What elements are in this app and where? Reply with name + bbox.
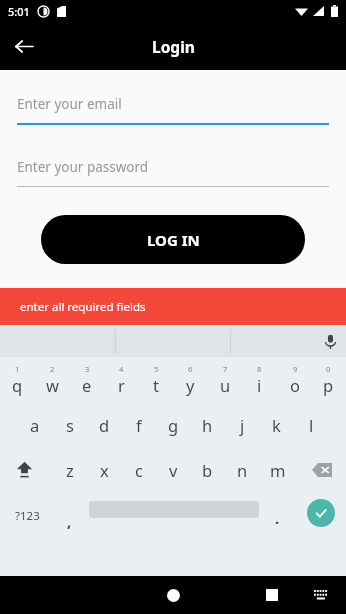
staticText: 5:01 [8, 4, 30, 19]
button[interactable]: Home [153, 576, 193, 614]
button[interactable]: LOG IN [41, 215, 305, 264]
staticText: 8 [257, 364, 262, 374]
staticText: 6 [188, 364, 193, 374]
staticText: l [309, 414, 314, 436]
staticText: s [66, 414, 74, 436]
button[interactable]: c [121, 447, 156, 492]
staticText: t [153, 374, 159, 396]
button[interactable]: 0 [311, 357, 346, 402]
button[interactable]: f [121, 402, 156, 447]
button[interactable]: Backspace [298, 447, 346, 492]
staticText: Enter your email [17, 95, 122, 113]
button[interactable]: z [52, 447, 87, 492]
staticText: . [275, 508, 280, 528]
staticText: ?123 [15, 508, 40, 524]
staticText: w [46, 374, 59, 396]
button[interactable]: . [263, 492, 292, 540]
staticText: v [169, 459, 178, 481]
button[interactable]: l [294, 402, 329, 447]
button[interactable]: 5 [138, 357, 173, 402]
staticText: , [67, 511, 72, 531]
button[interactable]: enter all required fields [0, 288, 346, 325]
button[interactable]: Recents [252, 576, 292, 614]
staticText: y [186, 374, 195, 396]
staticText: i [257, 374, 262, 396]
button[interactable]: 4 [104, 357, 139, 402]
button[interactable]: 2 [35, 357, 70, 402]
staticText: 9 [293, 364, 298, 374]
staticText: m [270, 459, 286, 481]
staticText: 1 [15, 364, 20, 374]
staticText: 0 [326, 364, 331, 374]
staticText: g [168, 414, 179, 436]
staticText: 4 [119, 364, 124, 374]
button[interactable]: 9 [277, 357, 312, 402]
staticText: a [30, 414, 40, 436]
button[interactable]: , [55, 492, 84, 540]
staticText: o [290, 374, 300, 396]
button[interactable]: 8 [242, 357, 277, 402]
staticText: k [272, 414, 281, 436]
button[interactable]: Back [0, 22, 48, 70]
button[interactable]: Switch keyboard [302, 576, 340, 614]
button[interactable]: 3 [69, 357, 104, 402]
staticText: Login [152, 36, 195, 57]
staticText: h [202, 414, 213, 436]
staticText: 5 [154, 364, 159, 374]
staticText: c [135, 459, 143, 481]
staticText: enter all required fields [20, 299, 146, 315]
button[interactable]: Enter your password [0, 158, 346, 188]
button[interactable]: g [156, 402, 191, 447]
staticText: LOG IN [147, 230, 200, 250]
staticText: x [100, 459, 109, 481]
button[interactable]: Voice input [314, 325, 346, 357]
button[interactable]: Enter your email [0, 95, 346, 125]
staticText: n [237, 459, 248, 481]
staticText: u [220, 374, 231, 396]
button[interactable]: 7 [208, 357, 243, 402]
staticText: b [202, 459, 213, 481]
staticText: Enter your password [17, 158, 149, 176]
button[interactable]: 6 [173, 357, 208, 402]
button[interactable]: h [190, 402, 225, 447]
staticText: 3 [85, 364, 90, 374]
button[interactable]: Shift [0, 447, 48, 492]
button[interactable]: 1 [0, 357, 35, 402]
staticText: j [240, 414, 245, 436]
staticText: r [118, 374, 125, 396]
staticText: p [323, 374, 334, 396]
button[interactable]: Enter [307, 499, 335, 527]
staticText: d [99, 414, 110, 436]
button[interactable]: a [17, 402, 52, 447]
button[interactable]: v [156, 447, 191, 492]
staticText: e [82, 374, 92, 396]
button[interactable]: ?123 [0, 492, 55, 540]
button[interactable]: m [260, 447, 295, 492]
button[interactable]: k [259, 402, 294, 447]
staticText: 2 [50, 364, 55, 374]
button[interactable]: s [52, 402, 87, 447]
button[interactable]: x [87, 447, 122, 492]
staticText: 7 [223, 364, 228, 374]
staticText: f [136, 414, 142, 436]
staticText: q [12, 374, 23, 396]
button[interactable]: j [225, 402, 260, 447]
button[interactable]: d [87, 402, 122, 447]
staticText: z [66, 459, 74, 481]
button[interactable]: n [225, 447, 260, 492]
button[interactable]: b [190, 447, 225, 492]
